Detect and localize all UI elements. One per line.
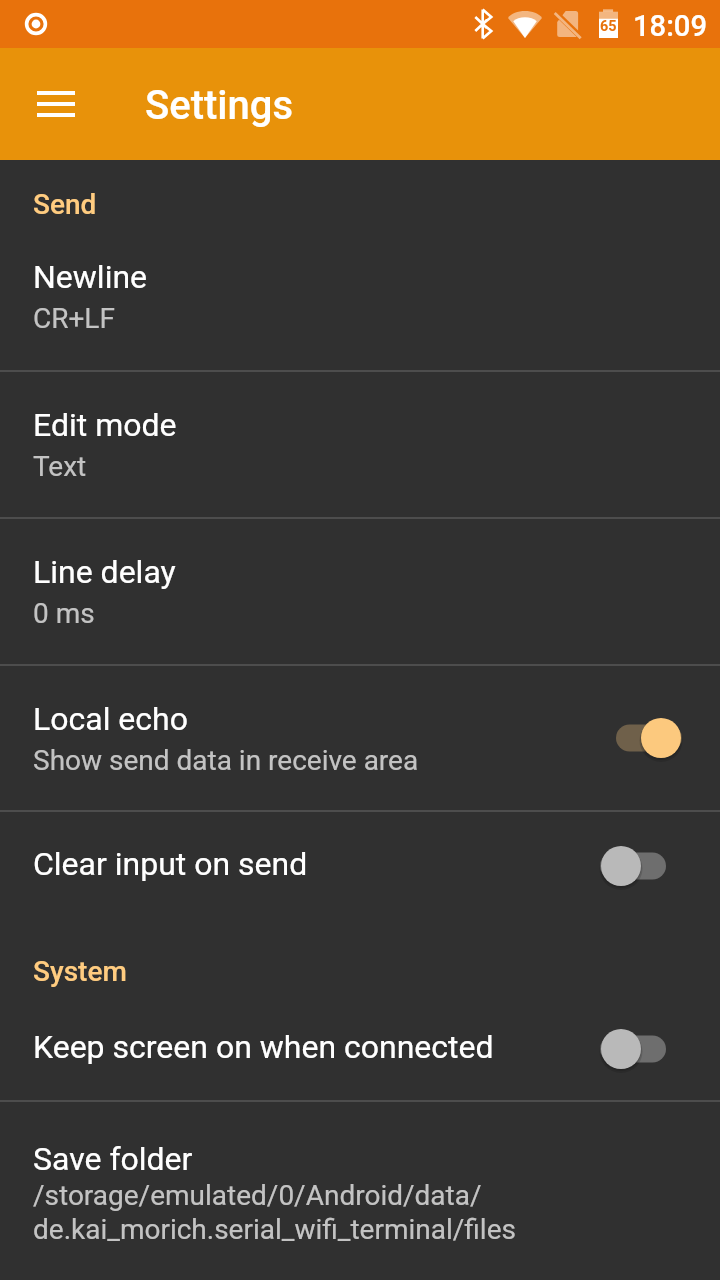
staticText: 18:09: [633, 9, 708, 43]
button[interactable]: Clear input on send: [0, 812, 720, 920]
button[interactable]: Local echo: [0, 666, 720, 810]
staticText: Edit mode: [33, 406, 177, 444]
button[interactable]: Open navigation drawer: [8, 56, 104, 152]
button[interactable]: Switch on: [600, 710, 682, 766]
staticText: Text: [33, 450, 87, 483]
staticText: Newline: [33, 258, 148, 296]
button[interactable]: Save folder: [0, 1102, 720, 1280]
button[interactable]: Switch off: [600, 1021, 682, 1077]
staticText: /storage/emulated/0/Android/data/: [33, 1179, 482, 1212]
staticText: Send: [33, 188, 97, 221]
staticText: Settings: [145, 82, 294, 129]
button[interactable]: Switch off: [600, 838, 682, 894]
button[interactable]: Edit mode: [0, 372, 720, 517]
staticText: Save folder: [33, 1140, 193, 1178]
staticText: Local echo: [33, 700, 188, 738]
button[interactable]: Newline: [0, 223, 720, 370]
staticText: CR+LF: [33, 302, 115, 335]
staticText: System: [33, 955, 127, 988]
button[interactable]: Line delay: [0, 519, 720, 664]
staticText: 0 ms: [33, 597, 95, 630]
button[interactable]: Keep screen on when connected: [0, 997, 720, 1100]
staticText: 65: [600, 18, 617, 35]
staticText: Keep screen on when connected: [33, 1028, 494, 1066]
staticText: Line delay: [33, 553, 176, 591]
staticText: Clear input on send: [33, 845, 308, 883]
staticText: Show send data in receive area: [33, 744, 419, 777]
staticText: de.kai_morich.serial_wifi_terminal/files: [33, 1213, 516, 1246]
